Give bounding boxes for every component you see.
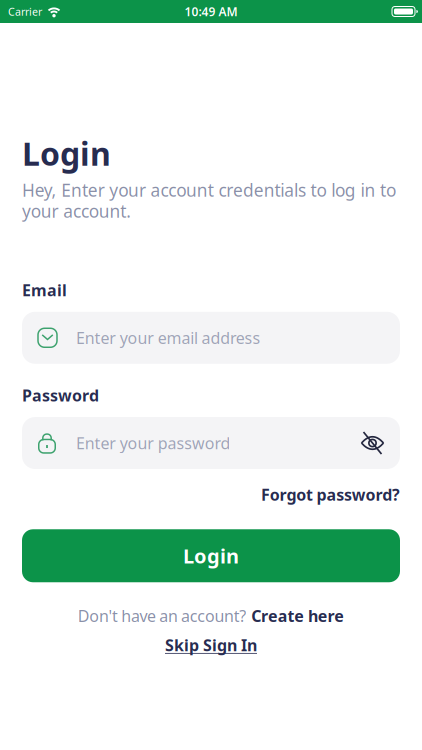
staticText: Don't have an account? xyxy=(78,605,246,626)
staticText: Login xyxy=(183,542,239,569)
button[interactable]: Skip Sign In xyxy=(165,634,257,656)
staticText: Login xyxy=(22,132,111,174)
staticText: Carrier xyxy=(8,4,42,19)
staticText: 10:49 AM xyxy=(184,3,237,19)
button[interactable]: Show password xyxy=(345,417,400,469)
staticText: Skip Sign In xyxy=(165,634,257,656)
button[interactable]: Create here xyxy=(251,605,344,626)
staticText: Hey, Enter your account credentials to l… xyxy=(22,178,396,222)
staticText: Password xyxy=(22,385,99,406)
staticText: Enter your password xyxy=(76,432,230,454)
staticText: Create here xyxy=(251,605,344,626)
button[interactable]: Forgot password? xyxy=(261,484,400,505)
button[interactable]: Email, Enter your email address xyxy=(22,312,400,364)
button[interactable]: Password, Enter your password xyxy=(22,417,400,469)
staticText: Forgot password? xyxy=(261,484,400,505)
staticText: Email xyxy=(22,279,67,301)
button[interactable]: Login xyxy=(22,529,400,582)
staticText: Enter your email address xyxy=(76,327,260,348)
